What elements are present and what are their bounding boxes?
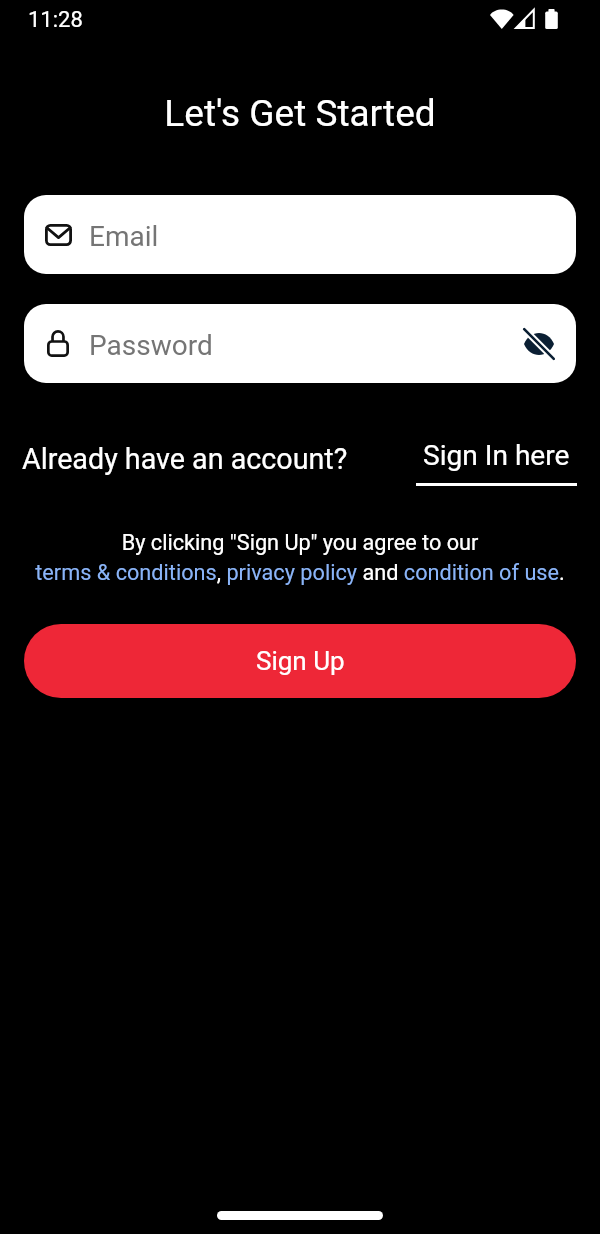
staticText: Sign In here: [423, 439, 570, 472]
button[interactable]: Password: [24, 304, 576, 383]
staticText: Email: [89, 220, 159, 253]
staticText: 11:28: [28, 7, 83, 33]
staticText: Already have an account?: [22, 442, 348, 476]
button[interactable]: Email: [24, 195, 576, 274]
button[interactable]: Sign In here: [416, 439, 577, 486]
button[interactable]: Sign Up: [24, 624, 576, 698]
staticText: By clicking "Sign Up" you agree to our t…: [0, 530, 600, 585]
button[interactable]: Toggle password visibility: [502, 304, 576, 383]
staticText: Sign Up: [256, 646, 345, 676]
staticText: Let's Get Started: [0, 92, 600, 135]
staticText: Password: [89, 329, 213, 362]
